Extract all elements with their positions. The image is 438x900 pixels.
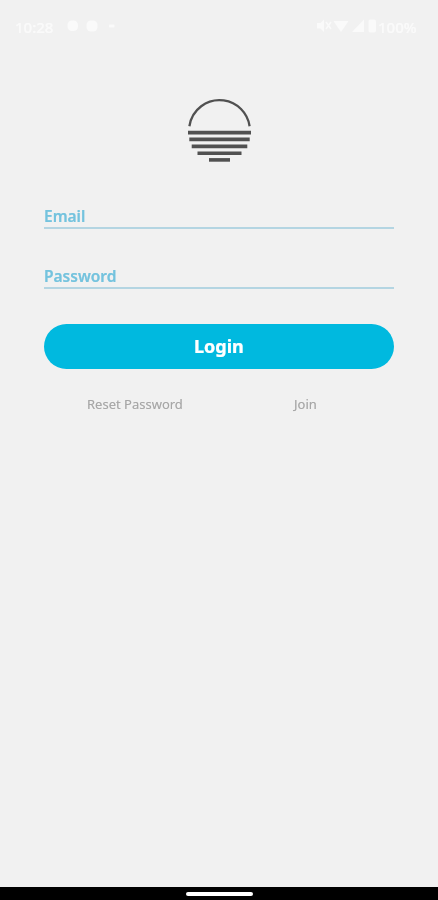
staticText: Password xyxy=(44,265,117,286)
other: Home xyxy=(186,892,253,896)
button[interactable]: Join xyxy=(250,392,360,416)
staticText: Email xyxy=(44,205,86,226)
button[interactable]: Password xyxy=(44,265,394,289)
staticText: Reset Password xyxy=(87,395,183,413)
staticText: Join xyxy=(294,395,317,413)
other: App logo xyxy=(187,96,251,164)
staticText: Login xyxy=(194,334,244,359)
staticText: 10:28 xyxy=(15,17,54,37)
button[interactable]: Reset Password xyxy=(60,392,210,416)
button[interactable]: Email xyxy=(44,205,394,229)
button[interactable]: Login xyxy=(44,324,394,369)
staticText: 100% xyxy=(378,17,417,37)
